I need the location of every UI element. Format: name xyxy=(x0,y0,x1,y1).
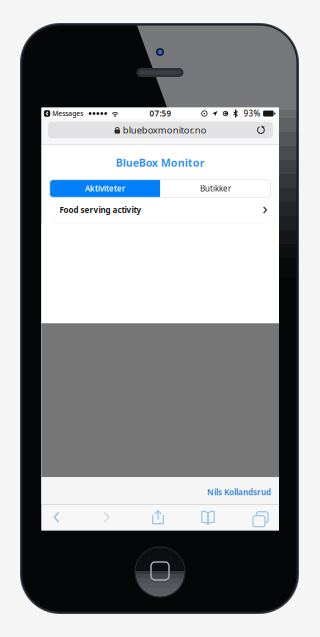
button[interactable]: Food serving activity xyxy=(41,197,279,223)
button[interactable]: Bookmarks xyxy=(184,504,231,530)
staticText: 93% xyxy=(243,108,260,119)
button[interactable]: blueboxmonitor.no xyxy=(41,119,279,145)
staticText: BlueBox Monitor xyxy=(116,155,205,170)
button[interactable]: Nils Kollandsrud xyxy=(207,484,279,497)
button[interactable]: Aktiviteter xyxy=(50,180,160,197)
staticText: blueboxmonitor.no xyxy=(123,124,207,136)
staticText: Aktiviteter xyxy=(85,183,125,194)
staticText: Nils Kollandsrud xyxy=(207,487,271,497)
staticText: Butikker xyxy=(200,183,231,194)
button[interactable]: Forward xyxy=(83,504,130,530)
staticText: Food serving activity xyxy=(59,205,141,215)
button[interactable]: Tabs xyxy=(235,504,282,530)
button[interactable]: Butikker xyxy=(160,180,271,197)
button[interactable]: Share xyxy=(134,504,181,530)
button[interactable]: Back xyxy=(33,504,80,530)
staticText: 07:59 xyxy=(149,108,171,119)
staticText: Messages xyxy=(52,109,83,118)
